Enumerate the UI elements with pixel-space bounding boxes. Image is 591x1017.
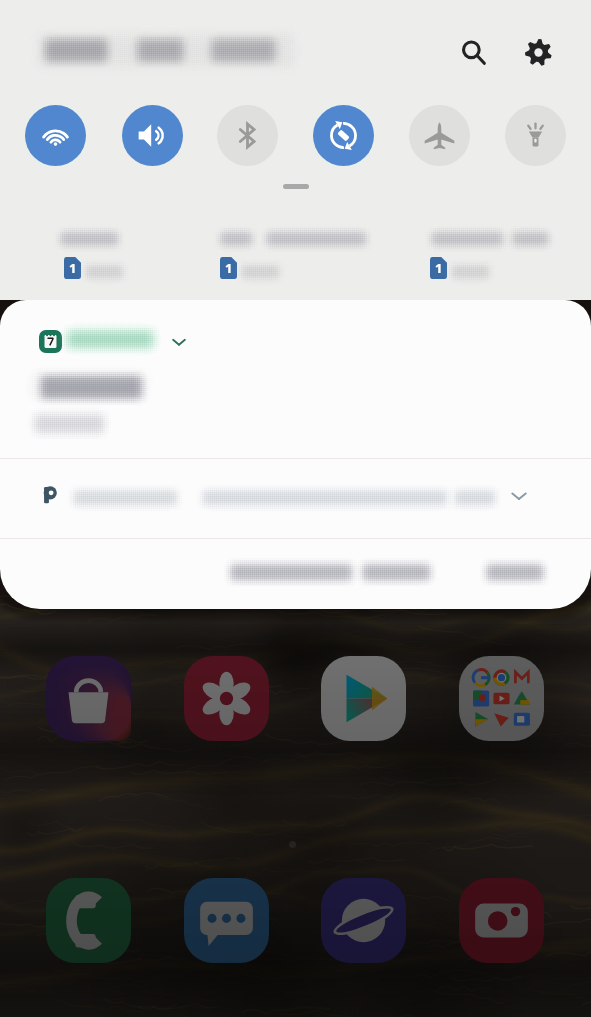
button[interactable]: Auto rotate — [313, 105, 374, 166]
button[interactable]: Dock app 1 — [184, 878, 269, 963]
staticText: 1 — [225, 259, 233, 277]
button[interactable]: App 3 — [459, 656, 544, 741]
button[interactable]: Bluetooth — [217, 105, 278, 166]
button[interactable]: Dock app 2 — [321, 878, 406, 963]
button[interactable]: Flashlight — [505, 105, 566, 166]
button[interactable]: Dock app 3 — [459, 878, 544, 963]
button[interactable]: App 1 — [184, 656, 269, 741]
button[interactable]: Expand notification — [164, 327, 194, 357]
staticText: 1 — [435, 259, 443, 277]
button[interactable]: Clear all — [477, 552, 551, 588]
button[interactable]: Sound — [122, 105, 183, 166]
button[interactable]: Search — [451, 30, 495, 74]
button[interactable]: Notification settings — [221, 552, 433, 588]
button[interactable]: Settings — [516, 30, 560, 74]
button[interactable]: App 2 — [321, 656, 406, 741]
button[interactable]: Expand notification — [504, 481, 534, 511]
button[interactable]: Airplane mode — [409, 105, 470, 166]
button[interactable]: Dock app 0 — [46, 878, 131, 963]
button[interactable]: App 0 — [46, 656, 131, 741]
staticText: 1 — [69, 259, 77, 277]
button[interactable]: Wi-Fi — [25, 105, 86, 166]
